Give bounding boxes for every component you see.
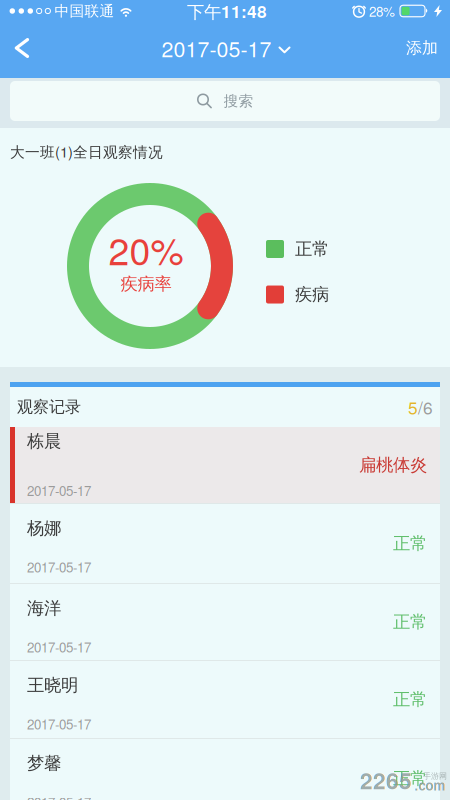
button[interactable]: 杨娜 (10, 504, 440, 583)
staticText: 杨娜 (27, 517, 61, 539)
staticText: 疾病率 (120, 273, 171, 295)
staticText: 28% (369, 2, 395, 20)
staticText: 正常 (393, 689, 427, 710)
staticText: 王晓明 (27, 674, 78, 696)
button[interactable]: 栋晨 (10, 427, 440, 503)
staticText: 梦馨 (27, 752, 61, 774)
button[interactable]: 搜索 (10, 81, 440, 121)
staticText: 下午11:48 (187, 0, 267, 23)
staticText: 搜索 (223, 92, 253, 110)
button[interactable]: 梦馨 (10, 739, 440, 800)
staticText: 2017-05-17 (27, 481, 91, 500)
button[interactable]: 海洋 (10, 584, 440, 660)
staticText: 大一班(1)全日观察情况 (10, 141, 163, 161)
staticText: 观察记录 (17, 397, 81, 417)
staticText: 2265 (360, 764, 412, 796)
staticText: 手游网 (423, 771, 447, 781)
button[interactable]: 添加 (406, 38, 438, 58)
staticText: 正常 (295, 238, 329, 260)
staticText: 正常 (393, 533, 427, 554)
staticText: 20% (108, 223, 183, 275)
staticText: 中国联通 (54, 2, 114, 20)
staticText: .com (414, 776, 445, 794)
button[interactable]: 2017-05-17 (161, 33, 290, 63)
staticText: 2017-05-17 (161, 33, 271, 63)
staticText: /6 (418, 395, 433, 419)
button[interactable]: 王晓明 (10, 661, 440, 738)
staticText: 5 (408, 395, 418, 419)
staticText: 2017-05-17 (27, 557, 91, 576)
staticText: 海洋 (27, 597, 61, 619)
staticText: 正常 (393, 768, 427, 789)
staticText: 疾病 (295, 284, 329, 305)
staticText: 添加 (406, 38, 438, 58)
staticText: 正常 (393, 611, 427, 633)
staticText: 2017-05-17 (27, 637, 91, 656)
staticText: 栋晨 (27, 430, 61, 452)
staticText: 2017-05-17 (27, 792, 91, 800)
button[interactable]: Back (2, 26, 42, 70)
staticText: 扁桃体炎 (359, 454, 427, 476)
staticText: 2017-05-17 (27, 714, 91, 733)
